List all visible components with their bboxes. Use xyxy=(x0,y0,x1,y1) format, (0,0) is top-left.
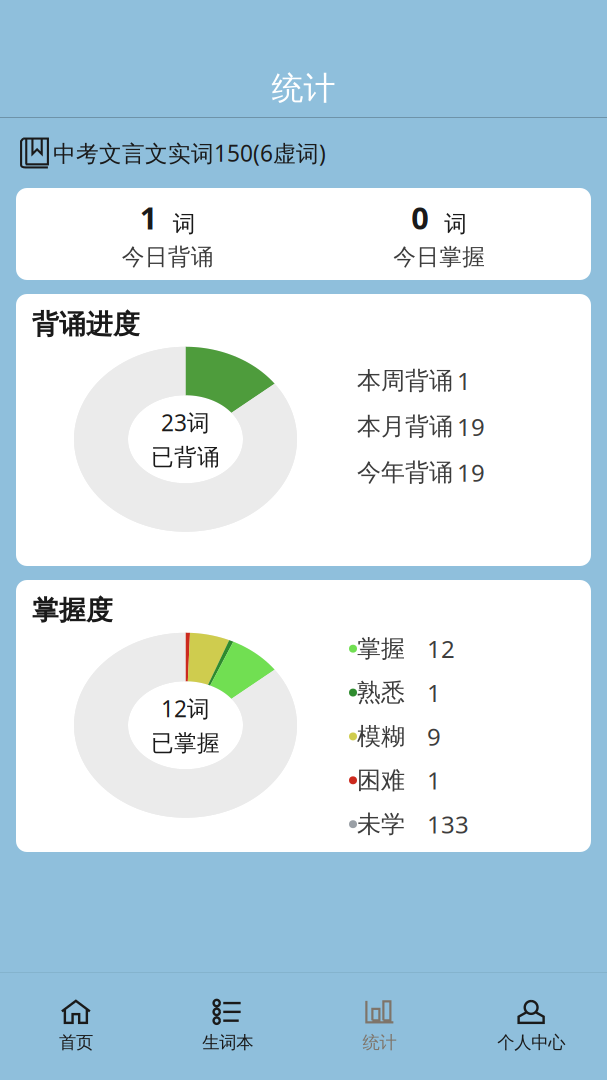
staticText: 今日掌握 xyxy=(393,243,485,271)
staticText: 19 xyxy=(457,411,485,442)
staticText: 1 xyxy=(427,677,441,708)
staticText: 生词本 xyxy=(202,1032,253,1053)
staticText: 个人中心 xyxy=(497,1032,565,1053)
staticText: 首页 xyxy=(59,1032,93,1053)
staticText: 今日背诵 xyxy=(122,243,214,271)
staticText: 9 xyxy=(427,720,441,752)
staticText: 本月背诵 xyxy=(357,412,453,441)
staticText: 未学 xyxy=(357,809,405,839)
staticText: 模糊 xyxy=(357,722,405,751)
button[interactable]: 生词本 xyxy=(152,973,304,1080)
staticText: 133 xyxy=(427,808,469,840)
staticText: 已背诵 xyxy=(151,443,220,471)
staticText: 掌握度 xyxy=(32,594,113,627)
staticText: 19 xyxy=(457,456,485,488)
staticText: 熟悉 xyxy=(357,678,405,707)
staticText: 0 xyxy=(411,197,429,238)
staticText: 统计 xyxy=(362,1032,396,1053)
staticText: 困难 xyxy=(357,766,405,795)
staticText: 今年背诵 xyxy=(357,458,453,487)
staticText: 统计 xyxy=(271,69,335,108)
button[interactable]: 统计 xyxy=(303,973,455,1080)
staticText: 12词 xyxy=(161,693,210,723)
staticText: 已掌握 xyxy=(151,729,220,757)
staticText: 12 xyxy=(427,633,455,665)
staticText: 词 xyxy=(444,210,467,238)
button[interactable]: 首页 xyxy=(0,973,152,1080)
button[interactable]: 个人中心 xyxy=(455,973,607,1080)
staticText: 掌握 xyxy=(357,634,405,663)
staticText: 中考文言文实词150(6虚词) xyxy=(53,138,326,168)
staticText: 1 xyxy=(140,197,158,238)
staticText: 背诵进度 xyxy=(32,308,140,341)
staticText: 本周背诵 xyxy=(357,366,453,395)
staticText: 词 xyxy=(173,210,196,238)
staticText: 23词 xyxy=(161,407,210,437)
staticText: 1 xyxy=(457,365,471,397)
staticText: 1 xyxy=(427,764,441,796)
